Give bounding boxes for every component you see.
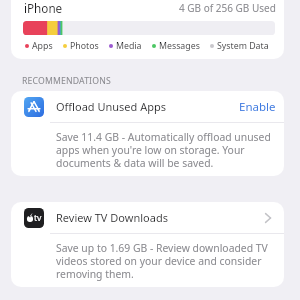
staticText: Media <box>116 40 142 52</box>
staticText: iPhone <box>24 0 63 16</box>
staticText: Save 11.4 GB - Automatically offload unu… <box>56 130 272 170</box>
staticText: Photos <box>70 40 99 52</box>
staticText: 4 GB of 256 GB Used <box>179 1 276 15</box>
staticText: RECOMMENDATIONS <box>22 75 111 87</box>
staticText: Enable <box>239 99 276 115</box>
staticText: Apps <box>32 40 53 52</box>
button[interactable]: Offload Unused Apps <box>11 91 284 176</box>
staticText: System Data <box>217 40 269 52</box>
staticText: Messages <box>159 40 200 52</box>
staticText: Save up to 1.69 GB - Review downloaded T… <box>56 241 272 281</box>
button[interactable]: tv <box>11 202 284 287</box>
staticText: tv <box>34 212 42 224</box>
staticText: Offload Unused Apps <box>56 99 167 114</box>
staticText: Review TV Downloads <box>56 210 168 225</box>
other: Open <box>265 213 271 223</box>
